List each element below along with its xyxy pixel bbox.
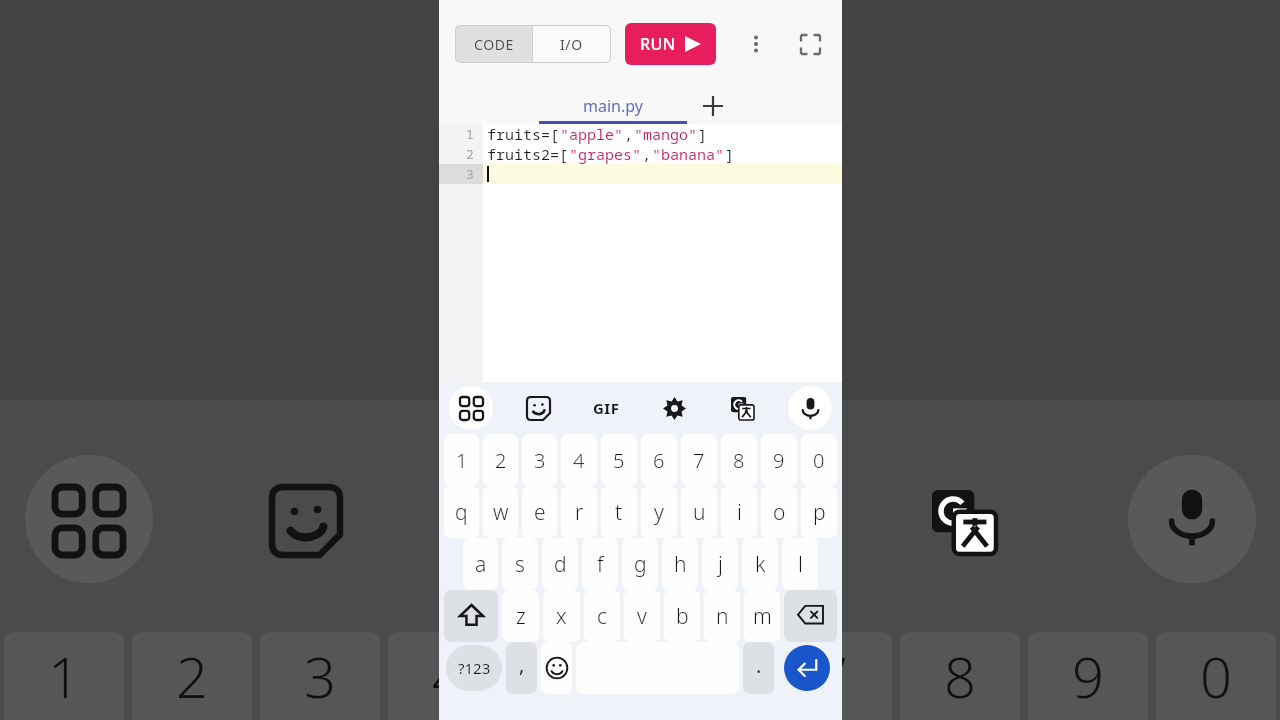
staticText: "grapes" xyxy=(569,144,642,164)
button[interactable]: s xyxy=(502,538,538,590)
staticText: l xyxy=(798,550,803,579)
staticText: a xyxy=(475,550,487,579)
button[interactable]: main.py xyxy=(539,88,687,124)
button[interactable]: o xyxy=(761,486,797,538)
button[interactable]: a xyxy=(463,538,498,590)
button[interactable]: 3 xyxy=(522,434,557,486)
button[interactable]: Stickers xyxy=(516,386,560,430)
button[interactable]: j xyxy=(702,538,738,590)
staticText: g xyxy=(634,550,647,579)
button[interactable]: 5 xyxy=(601,434,637,486)
staticText: f xyxy=(597,550,604,579)
button[interactable]: r xyxy=(561,486,597,538)
button[interactable]: d xyxy=(542,538,578,590)
staticText: ?123 xyxy=(458,658,491,678)
button[interactable]: z xyxy=(502,590,539,642)
staticText: 5 xyxy=(613,447,625,474)
button[interactable]: m xyxy=(744,590,780,642)
staticText: z xyxy=(516,602,526,631)
button[interactable]: 2 xyxy=(483,434,518,486)
staticText: 8 xyxy=(733,447,745,474)
button[interactable]: Settings xyxy=(652,386,696,430)
staticText: s xyxy=(515,550,525,579)
button[interactable]: x xyxy=(543,590,580,642)
button[interactable]: More options xyxy=(736,24,776,64)
button[interactable]: e xyxy=(522,486,557,538)
staticText: k xyxy=(755,550,766,579)
button[interactable]: Fullscreen xyxy=(790,24,830,64)
button[interactable]: 8 xyxy=(721,434,757,486)
staticText: "mango" xyxy=(634,124,698,144)
staticText: RUN xyxy=(640,33,676,55)
staticText: v xyxy=(637,602,647,631)
button[interactable]: k xyxy=(742,538,778,590)
staticText: 1 xyxy=(48,638,80,714)
staticText: 4 xyxy=(432,638,464,714)
button[interactable]: Enter xyxy=(784,645,830,691)
staticText: i xyxy=(737,498,742,527)
button[interactable]: l xyxy=(782,538,818,590)
button[interactable]: g xyxy=(622,538,658,590)
staticText: w xyxy=(493,498,509,527)
staticText: "apple" xyxy=(560,124,624,144)
button[interactable]: New file xyxy=(693,88,733,124)
staticText: ] xyxy=(698,124,708,144)
staticText: c xyxy=(597,602,607,631)
button[interactable]: p xyxy=(801,486,837,538)
button[interactable]: , xyxy=(506,642,537,694)
button[interactable]: f xyxy=(582,538,618,590)
button[interactable]: ?123 xyxy=(446,645,502,691)
staticText: 7 xyxy=(693,447,705,474)
staticText: 0 xyxy=(1200,638,1232,714)
button[interactable]: q xyxy=(444,486,479,538)
button[interactable]: RUN xyxy=(625,23,716,65)
button[interactable]: y xyxy=(641,486,677,538)
staticText: fruits2=[ xyxy=(487,144,569,164)
staticText: 5 xyxy=(560,638,592,714)
button[interactable]: 0 xyxy=(801,434,837,486)
button[interactable]: i xyxy=(721,486,757,538)
staticText: CODE xyxy=(474,35,514,54)
button[interactable]: GIF xyxy=(584,386,628,430)
staticText: fruits=[ xyxy=(487,124,560,144)
button[interactable]: h xyxy=(662,538,698,590)
staticText: 9 xyxy=(1072,638,1104,714)
staticText: b xyxy=(676,602,689,631)
staticText: 7 xyxy=(816,638,848,714)
button[interactable]: I/O xyxy=(533,26,610,62)
button[interactable]: u xyxy=(681,486,717,538)
button[interactable]: CODE xyxy=(456,26,532,62)
staticText: , xyxy=(624,124,634,144)
staticText: 6 xyxy=(688,638,720,714)
staticText: y xyxy=(654,498,664,527)
button[interactable]: 9 xyxy=(761,434,797,486)
button[interactable]: 4 xyxy=(561,434,597,486)
button[interactable]: Apps xyxy=(449,386,493,430)
button[interactable]: Emoji xyxy=(541,642,572,694)
button[interactable]: t xyxy=(601,486,637,538)
staticText: d xyxy=(554,550,567,579)
button[interactable]: 6 xyxy=(641,434,677,486)
staticText: 2 xyxy=(495,447,507,474)
button[interactable]: 1 xyxy=(444,434,479,486)
staticText: m xyxy=(753,602,772,631)
button[interactable]: Backspace xyxy=(784,590,837,642)
staticText: 3 xyxy=(466,165,474,183)
staticText: 1 xyxy=(466,125,474,143)
staticText: I/O xyxy=(560,35,583,54)
staticText: . xyxy=(756,652,762,679)
staticText: 3 xyxy=(534,447,546,474)
button[interactable]: b xyxy=(664,590,700,642)
staticText: 8 xyxy=(944,638,976,714)
button[interactable]: Shift xyxy=(444,590,498,642)
button[interactable]: Translate xyxy=(720,386,764,430)
staticText: q xyxy=(455,498,468,527)
button[interactable]: v xyxy=(624,590,660,642)
button[interactable]: . xyxy=(743,642,774,694)
button[interactable]: c xyxy=(584,590,620,642)
button[interactable]: 7 xyxy=(681,434,717,486)
button[interactable]: w xyxy=(483,486,518,538)
button[interactable]: n xyxy=(704,590,740,642)
button[interactable]: Voice input xyxy=(788,386,832,430)
